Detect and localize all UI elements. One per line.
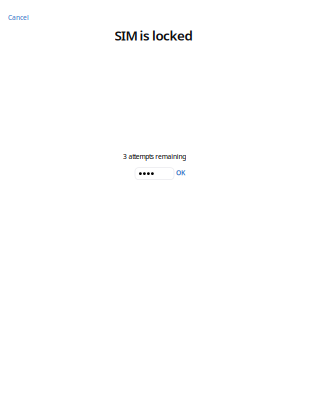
staticText: 3 attempts remaining [123,152,186,161]
button[interactable]: SIM PIN [135,168,174,180]
staticText: OK [176,168,185,177]
staticText: SIM is locked [114,26,192,44]
button[interactable]: OK [174,166,190,181]
staticText: Cancel [8,13,29,22]
button[interactable]: Cancel [0,0,35,28]
